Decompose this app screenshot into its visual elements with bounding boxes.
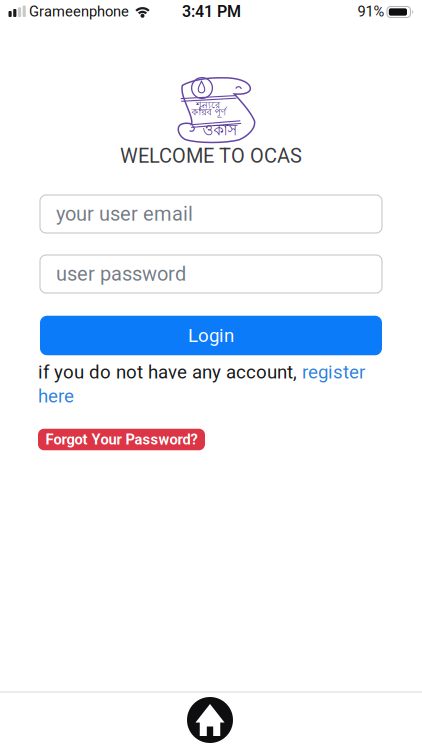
staticText: 91% (357, 3, 384, 20)
staticText: user password (56, 263, 186, 285)
staticText: ওকাস (202, 121, 237, 141)
staticText: Login (188, 325, 234, 346)
button[interactable] (187, 697, 233, 743)
staticText: Grameenphone (29, 3, 129, 20)
staticText: here (38, 385, 74, 407)
staticText: if you do not have any account, (38, 361, 302, 383)
staticText: Forgot Your Password? (45, 431, 197, 448)
staticText: 3:41 PM (182, 2, 241, 21)
button[interactable]: your user email (40, 195, 382, 233)
staticText: your user email (56, 203, 193, 225)
button[interactable]: user password (40, 255, 382, 293)
button[interactable]: register (302, 361, 365, 383)
staticText: করিব পূর্ণ (191, 106, 226, 119)
button[interactable]: here (38, 385, 74, 407)
staticText: WELCOME TO OCAS (120, 145, 302, 167)
button[interactable]: Forgot Your Password? (38, 429, 205, 450)
staticText: register (302, 361, 365, 383)
button[interactable]: Login (40, 316, 382, 355)
staticText: শূন্যরে (196, 99, 220, 112)
